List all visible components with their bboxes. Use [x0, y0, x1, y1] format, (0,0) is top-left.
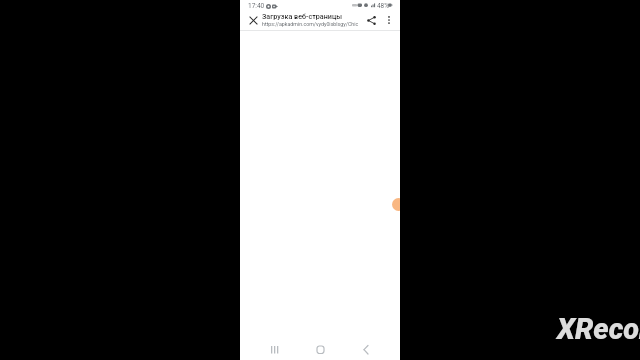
button[interactable]: Floating action button: [392, 198, 400, 211]
staticText: https://apkadmin.com/vydy0isblsgy/Chic: [262, 21, 359, 27]
staticText: Загрузка веб-страницы: [262, 12, 343, 20]
button[interactable]: Share: [364, 14, 378, 28]
staticText: 48%: [377, 2, 389, 10]
button[interactable]: Close: [246, 14, 260, 28]
button[interactable]: Загрузка веб-страницы: [262, 12, 364, 27]
staticText: 17:40: [248, 2, 265, 10]
button[interactable]: Recent apps: [261, 341, 277, 357]
staticText: XRecorder: [557, 312, 640, 346]
button[interactable]: Home: [312, 341, 328, 357]
button[interactable]: Back: [357, 341, 373, 357]
button[interactable]: More options: [382, 14, 396, 28]
